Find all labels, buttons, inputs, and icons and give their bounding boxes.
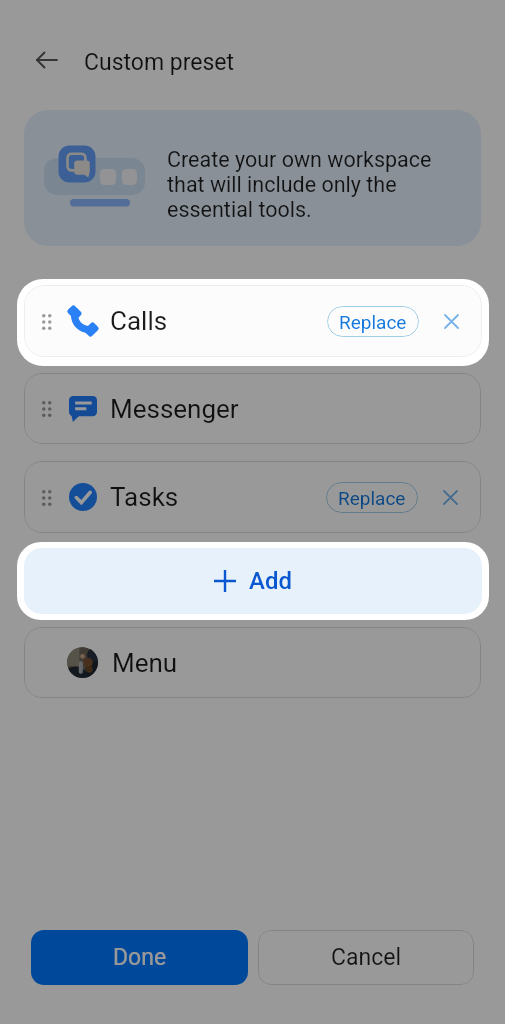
button[interactable]: Replace: [326, 482, 418, 513]
button[interactable]: Calls: [24, 285, 482, 357]
button[interactable]: Messenger: [24, 373, 481, 444]
staticText: Menu: [112, 648, 178, 678]
staticText: Calls: [110, 306, 168, 336]
staticText: Cancel: [331, 944, 402, 971]
button[interactable]: Cancel: [258, 930, 474, 985]
staticText: Create your own workspace that will incl…: [167, 147, 432, 222]
button[interactable]: Replace: [327, 306, 419, 337]
button[interactable]: Add: [24, 548, 482, 614]
button[interactable]: Remove: [434, 481, 466, 513]
staticText: Add: [249, 567, 292, 595]
staticText: Replace: [339, 311, 407, 333]
button[interactable]: Remove: [435, 305, 467, 337]
staticText: Replace: [338, 487, 406, 509]
staticText: Custom preset: [84, 49, 235, 76]
button[interactable]: Tasks: [24, 461, 481, 533]
staticText: Messenger: [110, 394, 239, 424]
staticText: Tasks: [110, 482, 179, 512]
button[interactable]: Menu: [24, 627, 481, 698]
staticText: Done: [113, 944, 167, 971]
button[interactable]: Done: [31, 930, 248, 985]
button[interactable]: Back: [26, 40, 66, 80]
